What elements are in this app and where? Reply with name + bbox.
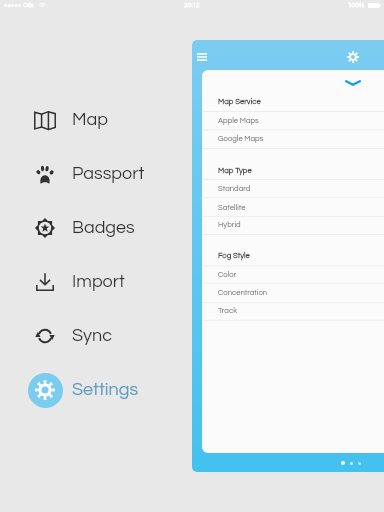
button[interactable]: Fog Style [202, 247, 384, 265]
staticText: Map Type [218, 167, 252, 175]
staticText: Olix [23, 2, 34, 9]
staticText: 100% [348, 2, 365, 9]
staticText: Passport [72, 164, 145, 183]
staticText: Map Service [218, 98, 261, 106]
staticText: Concentration [218, 289, 268, 297]
button[interactable]: Map Type [202, 162, 384, 180]
staticText: Apple Maps [218, 117, 259, 125]
staticText: Import [72, 272, 125, 291]
staticText: Sync [72, 326, 112, 345]
button[interactable]: Apple Maps [202, 112, 384, 130]
staticText: Color [218, 271, 237, 279]
button[interactable]: Passport [0, 147, 192, 201]
staticText: Standard [218, 185, 251, 193]
button[interactable]: Google Maps [202, 130, 384, 148]
button[interactable]: Concentration [202, 284, 384, 302]
staticText: Track [218, 307, 237, 315]
button[interactable]: Open navigation menu [193, 49, 211, 65]
staticText: Settings [72, 380, 139, 399]
button[interactable]: Satellite [202, 199, 384, 217]
button[interactable]: Sync [0, 309, 192, 363]
staticText: Badges [72, 218, 135, 237]
button[interactable]: Import [0, 255, 192, 309]
button[interactable]: Color [202, 266, 384, 284]
staticText: 20:12 [184, 2, 200, 9]
button[interactable]: Settings [344, 48, 362, 66]
button[interactable]: Map Service [202, 93, 384, 111]
button[interactable]: Hybrid [202, 216, 384, 234]
staticText: Map [72, 110, 108, 129]
staticText: Google Maps [218, 135, 264, 143]
staticText: Hybrid [218, 221, 241, 229]
staticText: Satellite [218, 204, 246, 212]
button[interactable]: Map [0, 93, 192, 147]
button[interactable]: Badges [0, 201, 192, 255]
button[interactable]: Settings [0, 363, 192, 417]
button[interactable]: Track [202, 302, 384, 320]
staticText: Fog Style [218, 252, 250, 260]
button[interactable]: Standard [202, 180, 384, 198]
